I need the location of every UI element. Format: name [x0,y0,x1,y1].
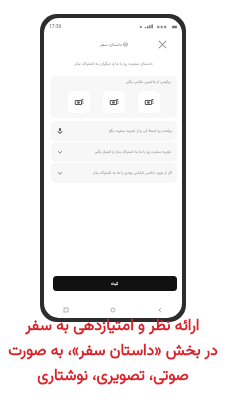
staticText: پیامت رو ضبط کن و از تجربه سفرت بگو [109,128,172,134]
button[interactable]: تجربه سفرت رو با ما به اشتراک بذار و امت… [51,142,177,162]
staticText: تجربه سفرت رو با ما به اشتراک بذار و امت… [95,149,172,155]
button[interactable]: Camera [138,91,160,113]
button[interactable]: ثبت [53,276,177,291]
button[interactable]: Recents [60,304,72,316]
staticText: ارائه نظر و امتیازدهی به سفر [25,314,200,339]
staticText: برایمن از ماشین عکس بگیر [126,79,171,86]
staticText: در بخش «داستان سفر»، به صورت [8,339,218,364]
staticText: ثبت [111,280,119,287]
button[interactable]: Camera [103,91,125,113]
staticText: صوتی، تصویری، نوشتاری [37,364,189,389]
button[interactable]: اگر از مورد خاصی ناراضی بودی با ما به اش… [51,163,177,183]
staticText: داستان سفر [100,41,122,48]
button[interactable]: پیامت رو ضبط کن و از تجربه سفرت بگو [51,121,177,141]
staticText: 17:36 [49,23,62,30]
button[interactable]: Home [107,304,119,316]
button[interactable]: Close [157,39,168,50]
button[interactable]: Back [154,304,166,316]
staticText: داستان سفرت رو با ما و دیگران به اشتراک … [74,60,153,67]
staticText: اگر از مورد خاصی ناراضی بودی با ما به اش… [93,170,172,176]
button[interactable]: Camera [68,91,90,113]
